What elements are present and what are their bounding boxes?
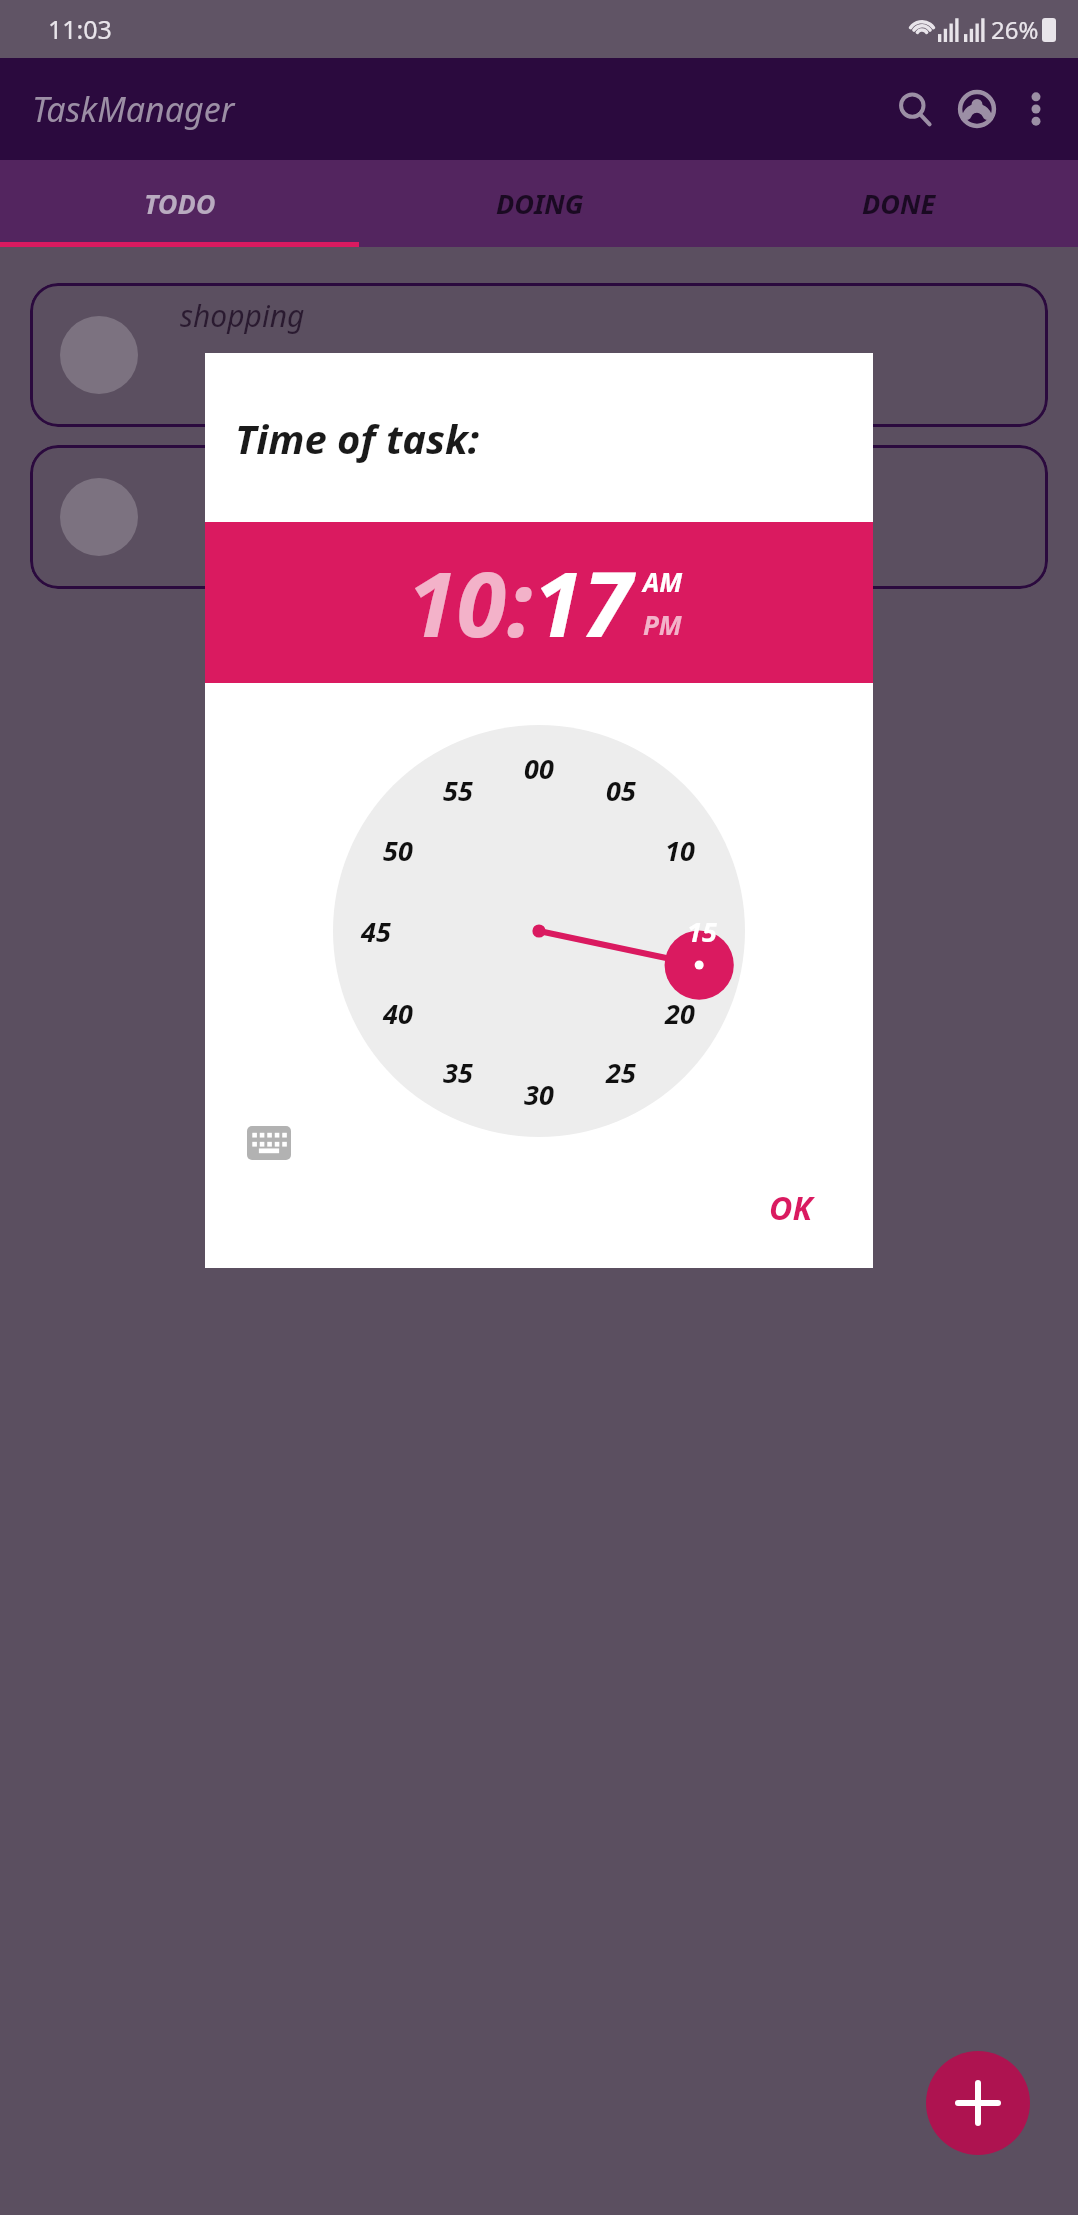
staticText: 10 [665,832,695,869]
staticText: 20 [665,995,695,1032]
button[interactable]: Account [946,78,1008,140]
button[interactable]: PM [643,607,682,642]
staticText: 05 [606,772,636,809]
button[interactable]: 10 [407,541,507,664]
staticText: 10 [407,541,507,664]
staticText: DONE [862,185,936,222]
staticText: AM [643,564,683,599]
staticText: TODO [144,185,216,222]
button[interactable]: Search [884,78,946,140]
staticText: : [507,541,533,664]
button[interactable]: More options [1008,81,1064,137]
staticText: PM [643,607,682,642]
staticText: DOING [496,185,584,222]
staticText: 15 [687,913,717,950]
button[interactable]: DONE [719,160,1078,247]
staticText: 55 [443,772,473,809]
staticText: 00 [524,750,554,787]
button[interactable]: DOING [360,160,719,247]
staticText: OK [769,1186,813,1230]
staticText: 35 [443,1054,473,1091]
staticText: 25 [606,1054,636,1091]
staticText: 45 [361,913,391,950]
staticText: Time of task: [235,411,480,465]
button[interactable]: Add task [926,2051,1030,2155]
staticText: 40 [383,995,413,1032]
staticText: 11:03 [48,12,112,46]
button[interactable]: 17 [533,541,633,664]
button[interactable]: Switch to keyboard input [247,1126,291,1160]
button[interactable]: TODO [0,160,360,247]
staticText: 17 [533,541,633,664]
staticText: 30 [524,1076,554,1113]
button[interactable]: shopping [30,283,1048,427]
button[interactable]: OK [769,1186,813,1230]
staticText: TaskManager [32,86,235,132]
staticText: 50 [383,832,413,869]
staticText: shopping [180,295,305,336]
button[interactable] [30,445,1048,589]
staticText: 26% [991,13,1039,46]
button[interactable]: AM [643,564,683,599]
